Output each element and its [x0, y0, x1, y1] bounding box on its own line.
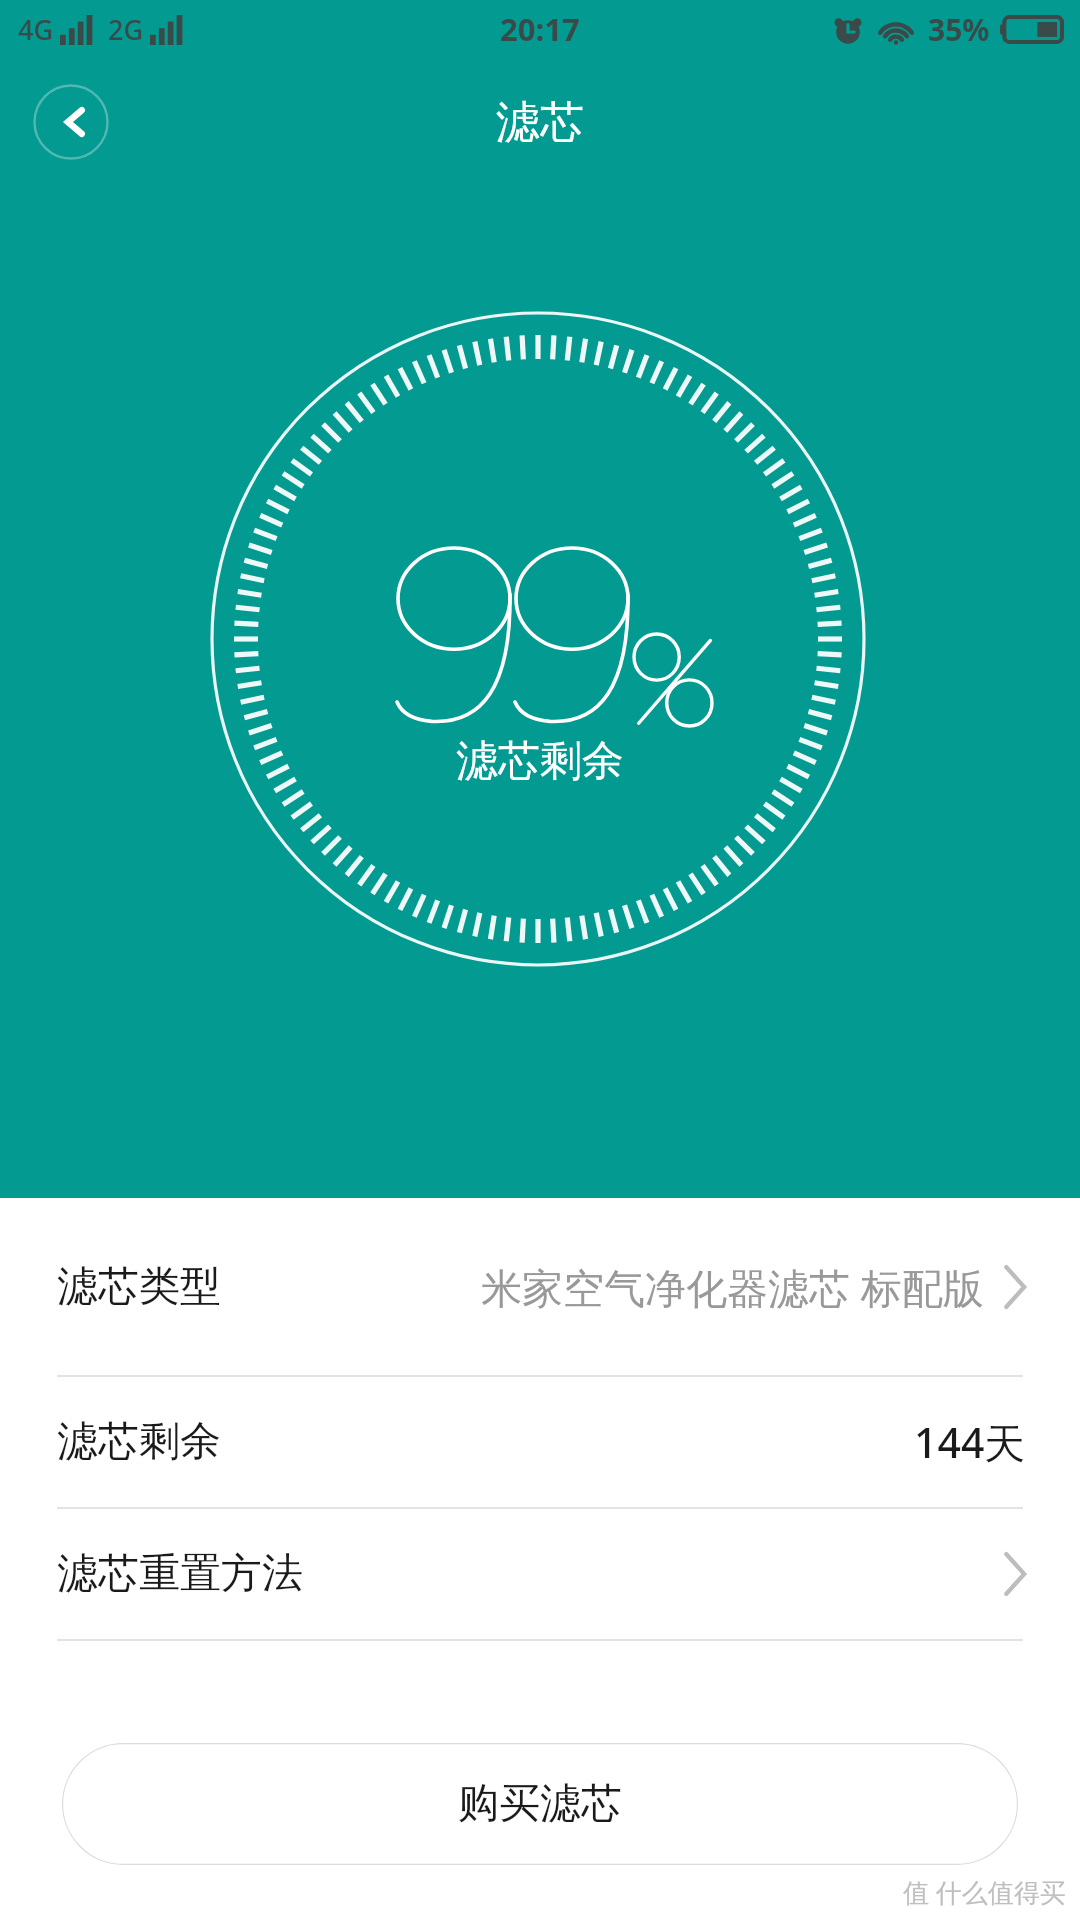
staticText: 滤芯重置方法 — [57, 1548, 303, 1600]
staticText: 35% — [928, 9, 990, 50]
staticText: 滤芯剩余 — [456, 735, 624, 788]
staticText: 滤芯类型 — [57, 1261, 221, 1313]
staticText: 144天 — [914, 1414, 1026, 1470]
button[interactable]: 购买滤芯 — [62, 1743, 1018, 1865]
staticText: 滤芯 — [496, 95, 584, 150]
staticText: 4G — [18, 11, 54, 48]
staticText: 2G — [108, 11, 144, 48]
button[interactable]: 滤芯剩余 — [0, 1377, 1080, 1507]
button[interactable]: 滤芯类型 — [0, 1198, 1080, 1375]
staticText: 米家空气净化器滤芯 标配版 — [481, 1259, 984, 1315]
staticText: 20:17 — [500, 8, 580, 50]
staticText: 值 什么值得买 — [903, 1874, 1066, 1910]
staticText: 购买滤芯 — [458, 1778, 622, 1830]
button[interactable]: Back — [33, 84, 109, 160]
button[interactable]: 滤芯重置方法 — [0, 1509, 1080, 1639]
staticText: 滤芯剩余 — [57, 1416, 221, 1468]
